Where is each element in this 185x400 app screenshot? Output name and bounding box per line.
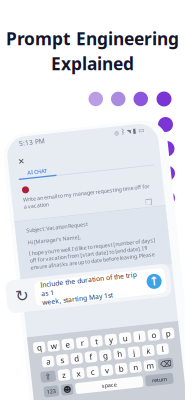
button[interactable]: 123 (32, 380, 47, 391)
staticText: Hi [Manager's Name], (32, 231, 85, 238)
staticText: j (125, 350, 127, 361)
button[interactable]: y (98, 335, 110, 346)
button[interactable]: ⌫ (149, 365, 164, 376)
button[interactable]: u (113, 335, 125, 346)
button[interactable]: n (120, 365, 132, 376)
staticText: space (90, 382, 105, 389)
button[interactable]: Send (147, 281, 162, 296)
button[interactable]: ⇧ (30, 365, 45, 376)
button[interactable]: h (105, 350, 117, 361)
button[interactable]: q (26, 335, 38, 346)
button[interactable]: j (120, 350, 132, 361)
staticText: Prompt Engineering (6, 27, 179, 50)
staticText: h (109, 350, 114, 361)
staticText: z (52, 365, 56, 376)
staticText: n (123, 365, 128, 376)
staticText: I hope you're well. I'd like to request … (32, 242, 159, 264)
staticText: return (141, 382, 156, 389)
staticText: x (66, 365, 70, 376)
button[interactable]: a (33, 350, 45, 361)
button[interactable]: v (91, 365, 103, 376)
staticText: Write an email to my manager requesting … (32, 188, 159, 203)
staticText: i (132, 335, 134, 346)
staticText: Include the duration of the trip as 1 we… (41, 275, 138, 302)
staticText: w (44, 335, 50, 346)
staticText: r (74, 335, 77, 346)
button[interactable]: d (62, 350, 74, 361)
staticText: e (58, 335, 63, 346)
button[interactable]: space (64, 380, 132, 391)
button[interactable]: r (69, 335, 81, 346)
button[interactable]: m (134, 365, 146, 376)
button[interactable]: s (48, 350, 60, 361)
button[interactable]: c (77, 365, 89, 376)
button[interactable]: o (141, 335, 153, 346)
staticText: ☻ (51, 381, 59, 390)
button[interactable]: ☻ (49, 380, 61, 391)
staticText: s (52, 350, 56, 361)
staticText: a (37, 350, 41, 361)
staticText: Subject: Vacation Request (32, 219, 94, 226)
staticText: ❐ (153, 203, 160, 213)
staticText: t (88, 335, 91, 346)
button[interactable]: i (127, 335, 139, 346)
staticText: u (116, 335, 121, 346)
staticText: 5:13 PM (34, 131, 60, 140)
staticText: v (95, 365, 99, 376)
button[interactable]: f (77, 350, 89, 361)
staticText: c (81, 365, 85, 376)
staticText: m (137, 365, 144, 376)
staticText: ▭ (154, 132, 160, 139)
staticText: Explained (51, 52, 134, 75)
staticText: ↻ (15, 279, 28, 298)
staticText: y (102, 335, 106, 346)
button[interactable]: t (84, 335, 96, 346)
button[interactable]: e (55, 335, 67, 346)
button[interactable]: Regenerate (13, 280, 30, 297)
button[interactable]: w (41, 335, 53, 346)
staticText: ↑ (149, 282, 159, 295)
button[interactable]: p (156, 335, 168, 346)
button[interactable]: l (149, 350, 161, 361)
staticText: o (145, 335, 150, 346)
button[interactable]: return (134, 380, 162, 391)
button[interactable]: g (91, 350, 103, 361)
staticText: b (109, 365, 114, 376)
button[interactable]: z (48, 365, 60, 376)
staticText: q (30, 335, 35, 346)
staticText: g (94, 350, 99, 361)
button[interactable]: Copy (152, 203, 161, 212)
staticText: 123 (35, 382, 44, 389)
staticText: d (66, 350, 71, 361)
staticText: p (159, 335, 164, 346)
button[interactable]: k (134, 350, 146, 361)
staticText: f (81, 350, 84, 361)
staticText: ⌫ (151, 366, 162, 375)
button[interactable]: b (105, 365, 117, 376)
staticText: l (154, 350, 156, 361)
button[interactable]: x (62, 365, 74, 376)
staticText: ◎ (130, 132, 135, 139)
staticText: k (138, 350, 142, 361)
